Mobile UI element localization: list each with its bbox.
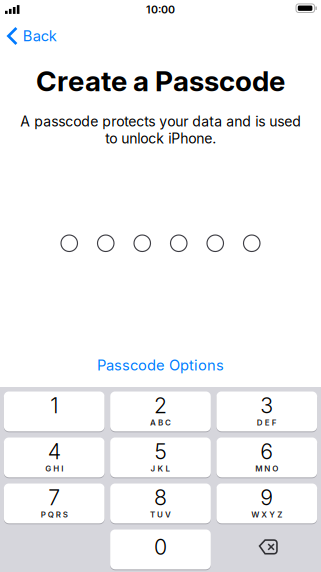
button[interactable]: 5: [110, 437, 211, 478]
staticText: A passcode protects your data and is use…: [20, 113, 301, 147]
staticText: M N O: [255, 464, 278, 473]
button[interactable]: 8: [110, 483, 211, 524]
staticText: 4: [48, 438, 61, 464]
staticText: 7: [48, 484, 60, 510]
button[interactable]: 0: [110, 529, 211, 570]
button[interactable]: 6: [216, 437, 317, 478]
staticText: J K L: [150, 464, 170, 473]
button[interactable]: Delete: [216, 529, 317, 570]
staticText: T U V: [150, 510, 171, 519]
staticText: 6: [260, 438, 273, 464]
staticText: 0: [154, 534, 167, 560]
button[interactable]: 4: [4, 437, 104, 478]
button[interactable]: 1: [4, 391, 104, 432]
staticText: G H I: [45, 464, 63, 473]
staticText: A B C: [150, 418, 171, 427]
button[interactable]: 7: [4, 483, 104, 524]
button[interactable]: 9: [216, 483, 317, 524]
staticText: 5: [154, 438, 166, 464]
staticText: W X Y Z: [251, 510, 282, 519]
staticText: 2: [154, 392, 167, 418]
staticText: Create a Passcode: [36, 64, 285, 98]
staticText: 3: [260, 392, 273, 418]
staticText: 8: [154, 484, 167, 510]
button[interactable]: Passcode Options: [85, 351, 236, 379]
staticText: 10:00: [146, 3, 175, 16]
button[interactable]: 2: [110, 391, 211, 432]
staticText: Back: [23, 27, 57, 45]
button[interactable]: Back: [0, 19, 66, 53]
button[interactable]: 3: [216, 391, 317, 432]
staticText: D E F: [257, 418, 277, 427]
staticText: Passcode Options: [97, 356, 224, 374]
staticText: P Q R S: [41, 510, 68, 519]
staticText: 9: [260, 484, 273, 510]
staticText: 1: [50, 392, 58, 418]
